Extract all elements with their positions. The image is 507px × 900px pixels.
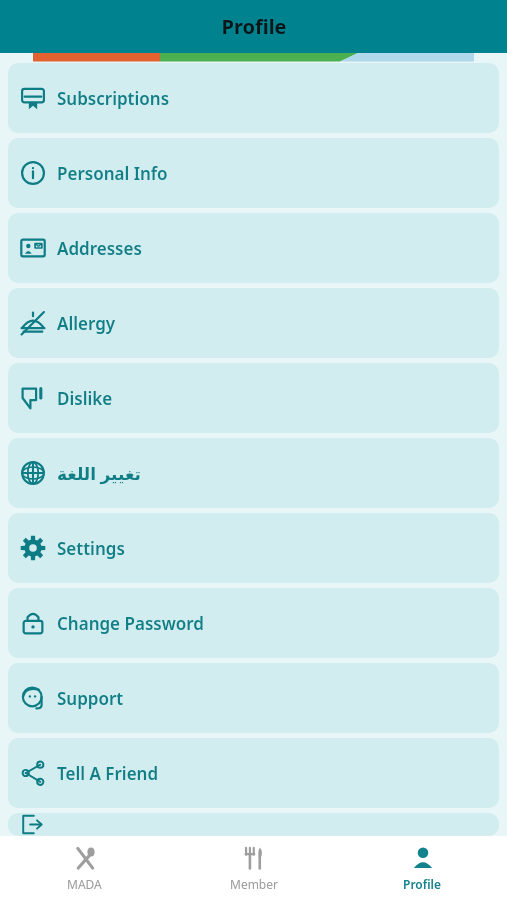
button[interactable]: Tell A Friend bbox=[8, 738, 499, 808]
staticText: Support bbox=[57, 687, 124, 710]
staticText: Dislike bbox=[57, 387, 113, 410]
staticText: Tell A Friend bbox=[57, 762, 159, 785]
staticText: Subscriptions bbox=[57, 87, 170, 110]
staticText: تغيير اللغة bbox=[57, 462, 141, 485]
button[interactable]: Dislike bbox=[8, 363, 499, 433]
staticText: Addresses bbox=[57, 237, 142, 260]
staticText: Profile bbox=[403, 876, 442, 892]
button[interactable]: Member bbox=[169, 836, 338, 900]
staticText: Personal Info bbox=[57, 162, 168, 185]
button[interactable]: Profile bbox=[338, 836, 507, 900]
staticText: Member bbox=[230, 876, 278, 892]
button[interactable]: Support bbox=[8, 663, 499, 733]
button[interactable]: تغيير اللغة bbox=[8, 438, 499, 508]
staticText: Settings bbox=[57, 537, 125, 560]
button[interactable]: Settings bbox=[8, 513, 499, 583]
staticText: Change Password bbox=[57, 612, 204, 635]
staticText: Profile bbox=[221, 13, 287, 40]
button[interactable]: Personal Info bbox=[8, 138, 499, 208]
button[interactable] bbox=[8, 813, 499, 836]
staticText: MADA bbox=[67, 876, 102, 892]
staticText: Allergy bbox=[57, 312, 116, 335]
button[interactable]: Addresses bbox=[8, 213, 499, 283]
button[interactable]: Allergy bbox=[8, 288, 499, 358]
button[interactable]: Change Password bbox=[8, 588, 499, 658]
button[interactable]: Subscriptions bbox=[8, 63, 499, 133]
button[interactable]: MADA bbox=[0, 836, 169, 900]
